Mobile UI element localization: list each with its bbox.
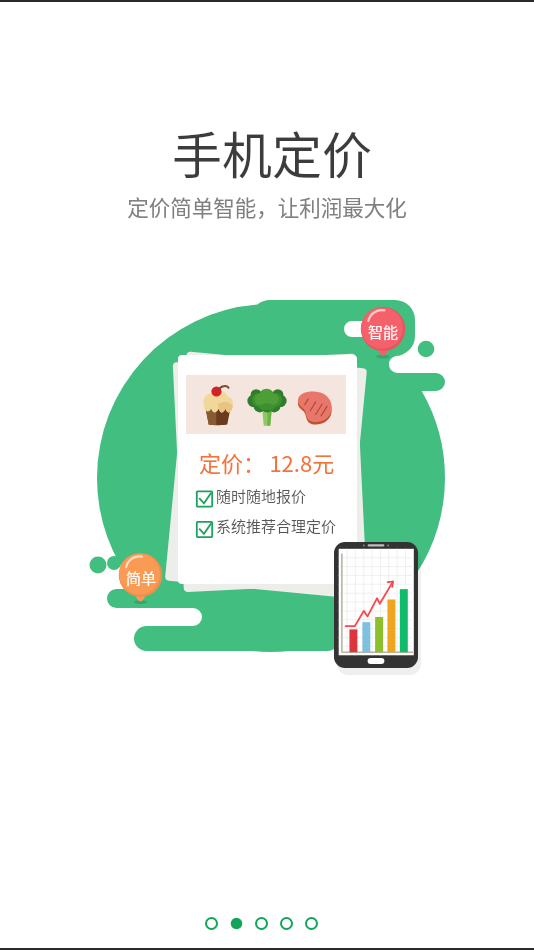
staticText: 系统推荐合理定价	[216, 515, 337, 537]
button[interactable]: Go to page 2	[230, 917, 243, 930]
button[interactable]: Go to page 1	[205, 917, 218, 930]
button[interactable]: Go to page 5	[305, 917, 318, 930]
staticText: 智能	[368, 321, 399, 343]
staticText: 定价： 12.8元	[199, 446, 335, 478]
staticText: 定价简单智能，让利润最大化	[127, 191, 407, 222]
button[interactable]: Go to page 3	[255, 917, 268, 930]
staticText: 手机定价	[172, 116, 372, 188]
staticText: 随时随地报价	[216, 485, 307, 507]
staticText: 简单	[126, 567, 157, 589]
button[interactable]: Go to page 4	[280, 917, 293, 930]
